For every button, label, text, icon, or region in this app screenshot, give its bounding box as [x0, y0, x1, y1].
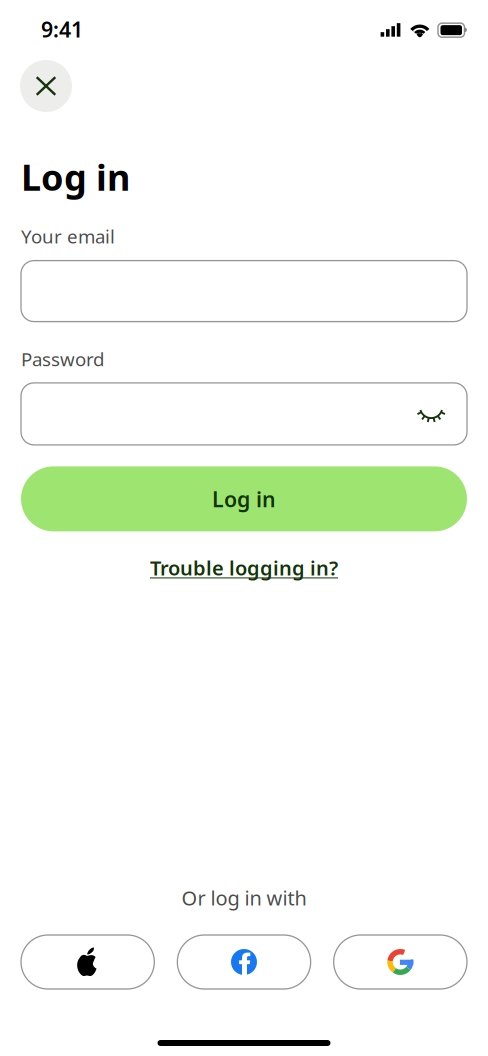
button[interactable]: Log in	[21, 466, 467, 531]
button[interactable]: Show password	[418, 387, 467, 441]
staticText: Password	[21, 347, 104, 371]
button[interactable]: Continue with Apple	[21, 935, 154, 989]
staticText: Trouble logging in?	[150, 554, 338, 581]
staticText: Log in	[21, 153, 130, 201]
button[interactable]: Continue with Facebook	[177, 935, 311, 989]
staticText: 9:41	[41, 15, 83, 43]
button[interactable]: Continue with Google	[334, 935, 467, 989]
staticText: Log in	[212, 485, 276, 513]
staticText: Your email	[21, 224, 115, 249]
button[interactable]: Close	[20, 60, 72, 112]
staticText: Or log in with	[181, 884, 306, 911]
button[interactable]: Trouble logging in?	[150, 545, 338, 590]
